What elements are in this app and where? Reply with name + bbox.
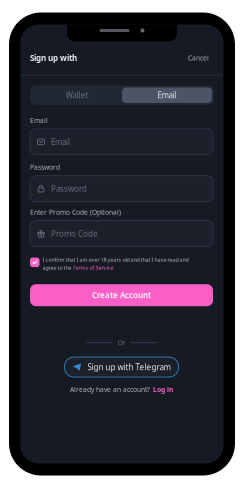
staticText: Password	[51, 183, 87, 194]
staticText: Already have an account?	[70, 385, 150, 394]
staticText: Sign up with Telegram	[87, 362, 170, 372]
button[interactable]: Cancel	[188, 54, 223, 62]
staticText: Password	[30, 163, 60, 172]
staticText: Terms of Service	[72, 264, 113, 271]
staticText: Create Account	[92, 290, 151, 300]
staticText: Email	[51, 136, 70, 147]
button[interactable]: I confirm that I am over 18 years old an…	[20, 247, 223, 271]
staticText: Sign up with	[30, 53, 77, 63]
staticText: Or	[117, 338, 125, 347]
button[interactable]: Wallet	[32, 87, 122, 103]
button[interactable]: Promo Code	[30, 221, 213, 247]
button[interactable]: Sign up with Telegram	[64, 357, 178, 377]
button[interactable]: Log in	[153, 385, 173, 394]
button[interactable]: Email	[30, 129, 213, 155]
staticText: I confirm that I am over 18 years old an…	[42, 256, 188, 263]
staticText: Email	[30, 116, 48, 125]
staticText: Log in	[153, 385, 173, 394]
staticText: Promo Code	[51, 228, 98, 239]
staticText: Enter Promo Code (Optional)	[30, 208, 121, 217]
button[interactable]: Create Account	[20, 271, 223, 306]
staticText: Cancel	[188, 54, 209, 62]
button[interactable]: Email	[122, 87, 212, 103]
staticText: Email	[157, 90, 176, 100]
staticText: Wallet	[65, 90, 88, 100]
button[interactable]: Password	[30, 176, 213, 202]
staticText: agree to the	[42, 264, 72, 271]
